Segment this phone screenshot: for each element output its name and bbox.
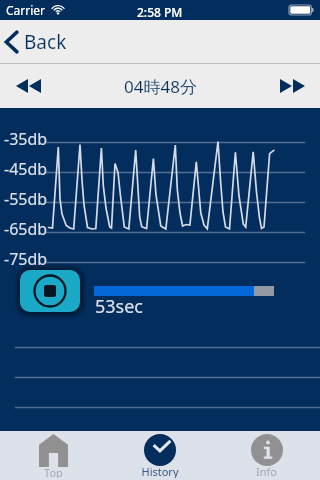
staticText: 53sec [95, 294, 144, 319]
staticText: 2:58 PM [137, 4, 183, 20]
staticText: 04時48分 [124, 75, 197, 98]
staticText: History [141, 464, 179, 478]
staticText: -55db [4, 188, 48, 210]
button[interactable]: Stop [20, 270, 80, 312]
button[interactable]: Previous [8, 64, 48, 108]
staticText: -65db [4, 218, 48, 240]
staticText: Info [256, 464, 277, 478]
button[interactable]: Back [0, 23, 79, 61]
button[interactable]: History [106, 431, 213, 480]
button[interactable]: Next [272, 64, 312, 108]
staticText: -75db [4, 248, 48, 270]
staticText: Back [24, 29, 67, 55]
button[interactable]: Info [213, 431, 320, 480]
staticText: -35db [4, 128, 48, 150]
staticText: -45db [4, 158, 48, 180]
staticText: Top [44, 465, 63, 478]
staticText: Carrier [6, 2, 46, 18]
button[interactable]: Top [0, 431, 106, 480]
